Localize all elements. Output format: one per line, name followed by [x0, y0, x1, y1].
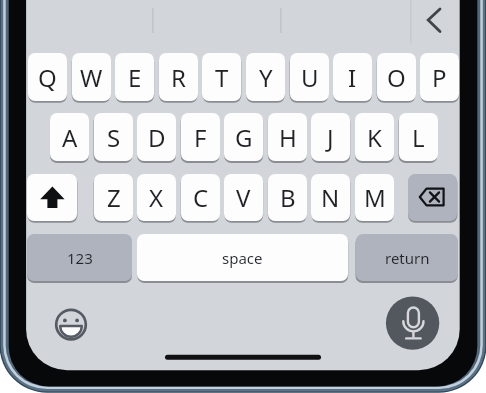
staticText: T: [215, 61, 229, 94]
button[interactable]: X: [137, 174, 176, 221]
button[interactable]: W: [72, 53, 111, 101]
staticText: L: [412, 121, 425, 154]
button[interactable]: I: [333, 53, 372, 101]
button[interactable]: D: [137, 113, 176, 161]
button[interactable]: space: [137, 234, 348, 281]
staticText: H: [279, 121, 297, 154]
button[interactable]: Y: [246, 53, 285, 101]
staticText: X: [149, 181, 164, 214]
button[interactable]: L: [399, 113, 438, 161]
staticText: V: [236, 181, 251, 214]
button[interactable]: M: [355, 174, 394, 221]
button[interactable]: O: [377, 53, 416, 101]
button[interactable]: [412, 2, 458, 42]
button[interactable]: [408, 174, 457, 221]
staticText: K: [367, 121, 382, 154]
staticText: C: [193, 181, 209, 214]
button[interactable]: G: [224, 113, 263, 161]
staticText: Y: [259, 61, 273, 94]
button[interactable]: U: [290, 53, 329, 101]
staticText: I: [348, 61, 357, 94]
staticText: G: [235, 121, 253, 154]
staticText: M: [364, 181, 386, 214]
button[interactable]: Q: [28, 53, 67, 101]
staticText: R: [171, 61, 186, 94]
button[interactable]: 123: [27, 234, 132, 281]
staticText: S: [107, 121, 121, 154]
button[interactable]: R: [159, 53, 198, 101]
button[interactable]: E: [115, 53, 154, 101]
button[interactable]: A: [50, 113, 89, 161]
staticText: P: [432, 61, 447, 94]
staticText: D: [148, 121, 166, 154]
staticText: B: [280, 181, 296, 214]
button[interactable]: P: [420, 53, 459, 101]
button[interactable]: J: [311, 113, 350, 161]
staticText: E: [128, 61, 142, 94]
staticText: 123: [67, 248, 93, 268]
staticText: Z: [107, 181, 121, 214]
button[interactable]: C: [181, 174, 220, 221]
staticText: W: [80, 61, 103, 94]
button[interactable]: S: [94, 113, 133, 161]
button[interactable]: return: [356, 234, 458, 281]
staticText: Q: [38, 61, 57, 94]
staticText: return: [385, 248, 430, 268]
staticText: J: [327, 121, 334, 154]
button[interactable]: [50, 303, 92, 345]
button[interactable]: V: [224, 174, 263, 221]
button[interactable]: Z: [94, 174, 133, 221]
button[interactable]: T: [202, 53, 241, 101]
staticText: space: [222, 248, 263, 268]
staticText: A: [62, 121, 78, 154]
button[interactable]: F: [181, 113, 220, 161]
button[interactable]: N: [311, 174, 350, 221]
button[interactable]: [386, 296, 440, 350]
staticText: U: [301, 61, 319, 94]
staticText: N: [321, 181, 340, 214]
button[interactable]: B: [268, 174, 307, 221]
staticText: F: [194, 121, 207, 154]
button[interactable]: H: [268, 113, 307, 161]
staticText: O: [387, 61, 406, 94]
button[interactable]: [27, 174, 77, 221]
button[interactable]: K: [355, 113, 394, 161]
